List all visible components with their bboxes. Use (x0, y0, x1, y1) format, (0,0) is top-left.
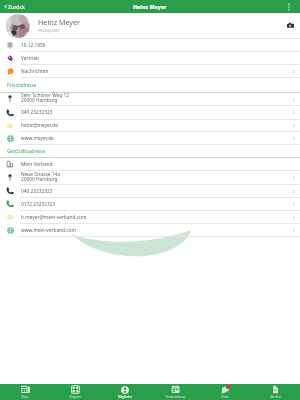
button[interactable]: Magazin (50, 384, 100, 400)
staticText: Mitglieder (118, 395, 132, 399)
button[interactable]: Vertrieb (0, 52, 300, 64)
staticText: Sehr Schöner Weg 12 20000 Hamburg (21, 92, 69, 104)
staticText: Zurück (8, 3, 25, 10)
button[interactable]: Sehr Schöner Weg 12 20000 Hamburg (0, 93, 300, 105)
staticText: Medien (270, 395, 281, 399)
button[interactable]: Nachrichten (0, 65, 300, 77)
button[interactable]: Medien (250, 384, 300, 400)
button[interactable]: www.meyer.de (0, 132, 300, 144)
button[interactable]: Neue Strasse 14a 20000 Hamburg (0, 171, 300, 184)
staticText: 0172 23232323 (21, 201, 56, 208)
staticText: Nachrichten (21, 68, 49, 75)
button[interactable]: Heinz Meyer (0, 13, 300, 38)
button[interactable]: More options (282, 0, 295, 13)
button[interactable]: News (0, 384, 50, 400)
staticText: Geschäftsadresse (7, 148, 45, 154)
button[interactable]: heinz@meyer.de (0, 120, 300, 131)
button[interactable]: www.mein-verband.com (0, 224, 300, 236)
button[interactable]: Veranstaltung (150, 384, 200, 400)
staticText: Privatadresse (7, 82, 37, 88)
staticText: www.meyer.de (21, 135, 54, 142)
button[interactable]: Chats (200, 384, 250, 400)
staticText: Vertrieb (21, 55, 40, 62)
staticText: News (21, 395, 29, 399)
staticText: heinz@meyer.de (21, 122, 58, 129)
staticText: Heinz Meyer (133, 3, 167, 10)
staticText: Chats (221, 395, 229, 399)
button[interactable]: h.meyer@mein-verband.com (0, 211, 300, 223)
staticText: Veranstaltung (165, 395, 185, 399)
staticText: Magazin (69, 395, 81, 399)
staticText: Heinz Meyer (38, 17, 81, 27)
staticText: Mein Verband (21, 161, 53, 168)
staticText: 040 23232323 (21, 188, 53, 195)
button[interactable]: Mitglieder (100, 384, 150, 400)
button[interactable]: 040 23232323 (0, 185, 300, 197)
staticText: Neue Strasse 14a 20000 Hamburg (21, 171, 60, 183)
staticText: www.mein-verband.com (21, 227, 76, 234)
staticText: PROMJOBST (38, 28, 60, 33)
staticText: 10.12.1956 (21, 42, 46, 49)
staticText: h.meyer@mein-verband.com (21, 214, 87, 221)
button[interactable]: 10.12.1956 (0, 39, 300, 51)
button[interactable]: Change profile photo (285, 20, 296, 31)
button[interactable]: 0172 23232323 (0, 198, 300, 210)
button[interactable]: 040 23232323 (0, 106, 300, 119)
staticText: 040 23232323 (21, 109, 53, 116)
button[interactable]: Mein Verband (0, 158, 300, 170)
button[interactable]: Zurück (0, 0, 300, 13)
